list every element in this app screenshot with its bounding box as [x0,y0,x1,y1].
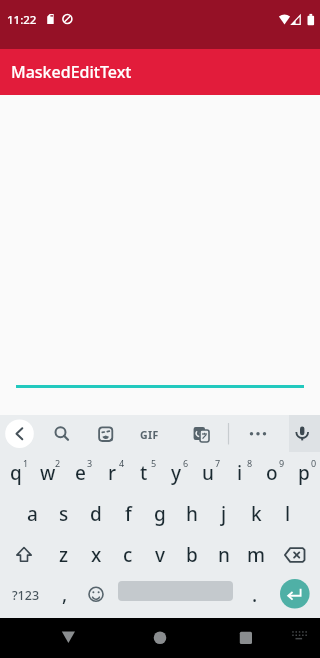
button[interactable]: a [16,494,48,534]
button[interactable]: f [112,494,144,534]
button[interactable]: v [144,534,176,576]
staticText: j [221,501,227,527]
button[interactable]: GIF [126,415,172,452]
staticText: f [125,501,132,527]
staticText: . [252,582,258,608]
staticText: c [123,542,133,568]
staticText: a [27,501,38,527]
button[interactable]: e [64,452,96,494]
button[interactable]: MaskedEditText [0,49,320,95]
staticText: 8 [247,457,253,469]
button[interactable]: n [208,534,240,576]
staticText: 9 [279,457,285,469]
button[interactable] [230,415,289,452]
button[interactable]: l [272,494,304,534]
staticText: i [237,460,243,486]
staticText: 2 [55,457,61,469]
staticText: h [186,501,198,527]
button[interactable]: k [240,494,272,534]
button[interactable]: m [240,534,272,576]
staticText: 11:22 [7,12,37,28]
button[interactable] [113,576,238,618]
button[interactable]: q [0,452,32,494]
button[interactable]: . [238,576,272,618]
staticText: 7 [215,457,221,469]
staticText: s [59,501,69,527]
button[interactable]: r [96,452,128,494]
button[interactable] [272,534,320,576]
button[interactable]: h [176,494,208,534]
staticText: 3 [87,457,93,469]
staticText: 0 [311,457,317,469]
button[interactable]: o [256,452,288,494]
button[interactable] [80,576,109,618]
button[interactable] [0,534,48,576]
staticText: v [155,542,166,568]
button[interactable] [272,576,320,618]
button[interactable] [172,415,230,452]
button[interactable]: s [48,494,80,534]
staticText: 1 [23,457,29,469]
staticText: r [108,460,117,486]
staticText: GIF [140,428,159,442]
staticText: ?123 [12,587,40,604]
button[interactable] [0,415,40,452]
button[interactable] [0,618,106,658]
button[interactable]: y [160,452,192,494]
staticText: z [59,542,69,568]
staticText: 4 [119,457,125,469]
staticText: d [90,501,102,527]
button[interactable]: , [50,576,80,618]
button[interactable]: i [224,452,256,494]
staticText: m [247,542,265,568]
button[interactable]: x [80,534,112,576]
button[interactable]: c [112,534,144,576]
staticText: , [62,581,68,607]
staticText: b [186,542,198,568]
staticText: MaskedEditText [11,61,132,83]
staticText: k [251,501,262,527]
staticText: 6 [183,457,189,469]
button[interactable] [40,415,82,452]
staticText: u [202,460,214,486]
button[interactable] [82,415,126,452]
staticText: l [285,501,291,527]
staticText: e [75,460,86,486]
button[interactable]: g [144,494,176,534]
staticText: p [298,460,310,486]
button[interactable]: t [128,452,160,494]
staticText: w [40,460,56,486]
button[interactable]: u [192,452,224,494]
button[interactable]: b [176,534,208,576]
staticText: 5 [151,457,157,469]
button[interactable] [106,618,213,658]
staticText: g [154,501,166,527]
button[interactable] [289,415,320,452]
button[interactable] [213,618,320,658]
button[interactable]: ?123 [0,576,50,618]
button[interactable]: p [288,452,320,494]
button[interactable]: d [80,494,112,534]
staticText: y [171,460,182,486]
staticText: n [218,542,230,568]
staticText: t [140,460,148,486]
button[interactable]: z [48,534,80,576]
staticText: o [266,460,278,486]
staticText: q [10,460,22,486]
button[interactable]: j [208,494,240,534]
button[interactable]: w [32,452,64,494]
staticText: x [91,542,102,568]
